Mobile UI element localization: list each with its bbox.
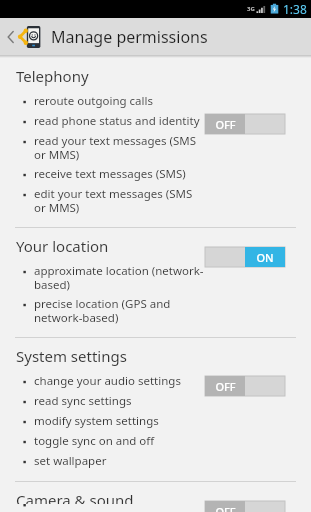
staticText: edit your text messages (SMS or MMS) <box>34 186 206 216</box>
staticText: set wallpaper <box>34 453 206 469</box>
staticText: OFF <box>215 117 236 132</box>
staticText: ON <box>256 250 274 265</box>
staticText: modify system settings <box>34 413 206 429</box>
button[interactable]: Toggle permission off <box>205 376 285 396</box>
staticText: OFF <box>215 504 236 512</box>
staticText: change your audio settings <box>34 373 206 389</box>
staticText: approximate location (network-based) <box>34 263 206 293</box>
staticText: OFF <box>215 379 236 394</box>
staticText: Your location <box>16 236 109 256</box>
button[interactable]: Toggle permission on <box>205 247 285 267</box>
other: Navigate up <box>6 29 16 45</box>
staticText: 1:38 <box>283 1 307 17</box>
staticText: 3G <box>247 5 255 13</box>
staticText: read your text messages (SMS or MMS) <box>34 133 206 163</box>
staticText: precise location (GPS and network-based) <box>34 296 206 326</box>
staticText: receive text messages (SMS) <box>34 166 206 182</box>
staticText: System settings <box>16 346 127 366</box>
staticText: read phone status and identity <box>34 113 206 129</box>
button[interactable]: Toggle permission off <box>205 114 285 134</box>
staticText: toggle sync on and off <box>34 433 206 449</box>
button[interactable]: Navigate up <box>6 24 311 50</box>
staticText: Telephony <box>16 66 89 86</box>
button[interactable]: Toggle permission off <box>205 501 285 512</box>
staticText: Camera & sound <box>16 490 134 504</box>
staticText: reroute outgoing calls <box>34 93 206 109</box>
staticText: Manage permissions <box>51 26 208 48</box>
staticText: read sync settings <box>34 393 206 409</box>
